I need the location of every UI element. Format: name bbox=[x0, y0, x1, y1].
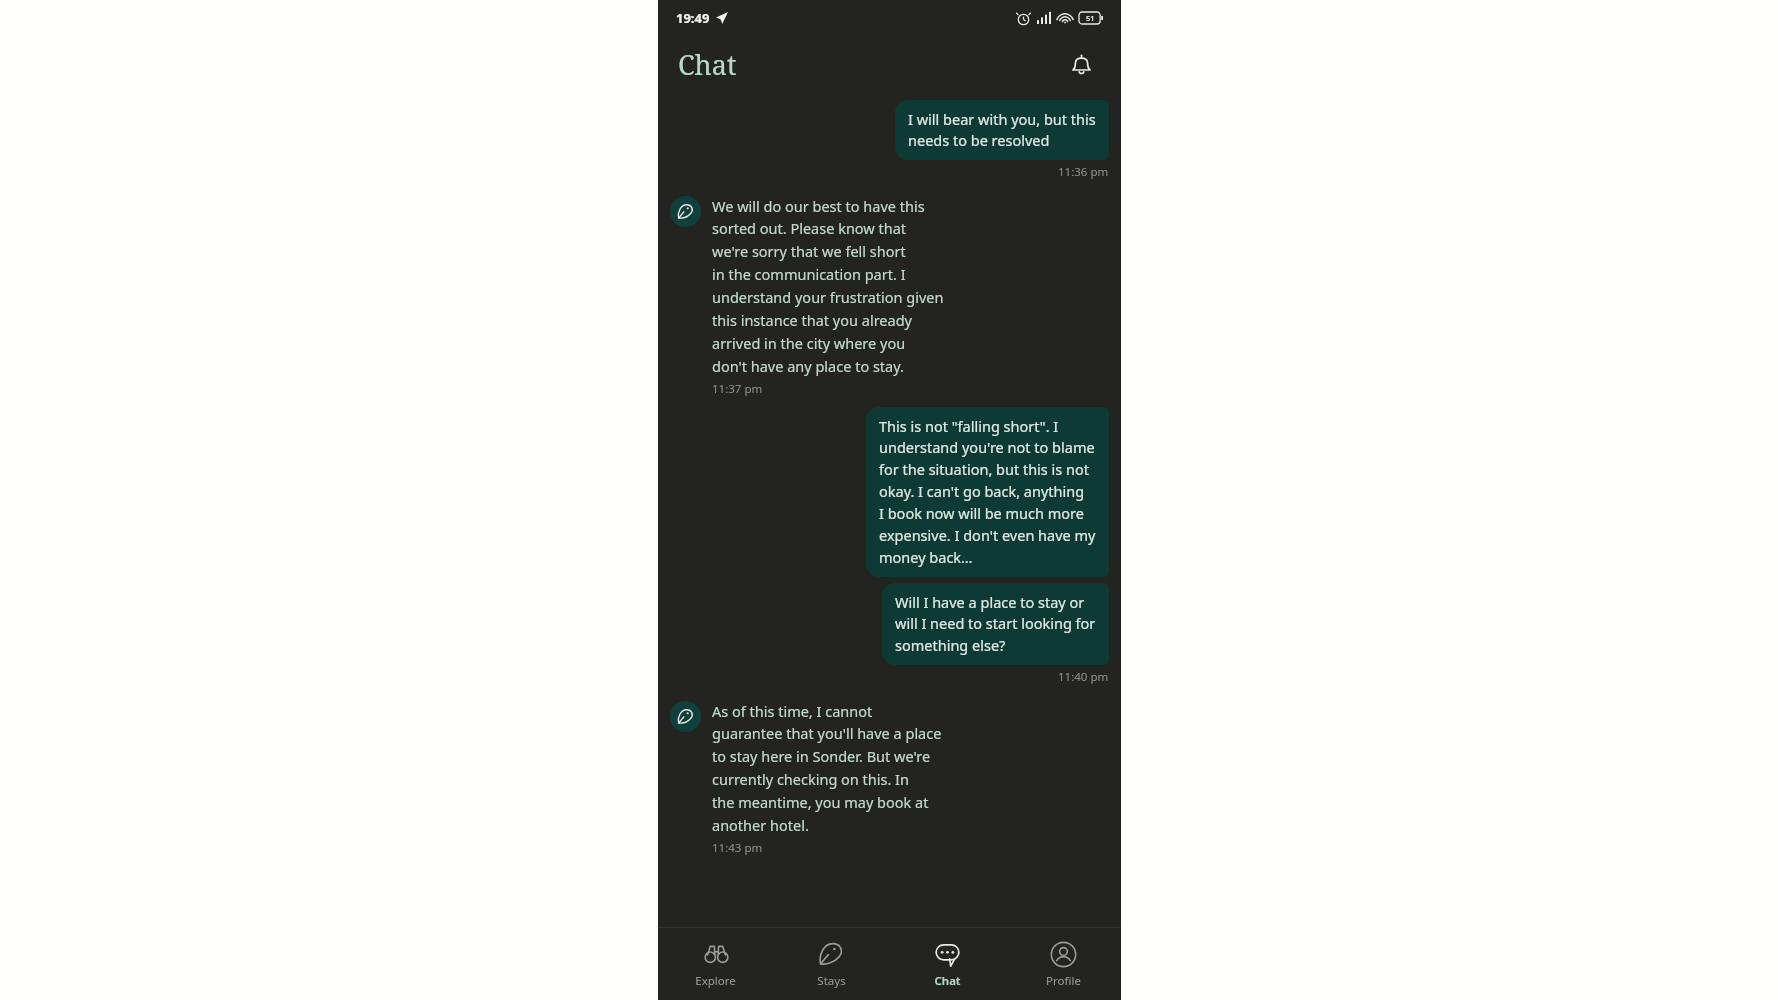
staticText: 51 bbox=[1086, 13, 1095, 23]
staticText: As of this time, I cannot guarantee that… bbox=[712, 701, 942, 835]
staticText: We will do our best to have this sorted … bbox=[712, 196, 944, 376]
staticText: 11:36 pm bbox=[1058, 164, 1109, 180]
button[interactable]: Profile bbox=[1005, 928, 1121, 1000]
button[interactable]: I will bear with you, but this needs to … bbox=[895, 100, 1109, 160]
staticText: Will I have a place to stay or will I ne… bbox=[895, 592, 1096, 656]
staticText: 19:49 bbox=[676, 9, 710, 27]
button[interactable]: Notifications bbox=[1061, 44, 1101, 84]
staticText: Chat bbox=[934, 973, 961, 989]
staticText: 11:43 pm bbox=[712, 840, 763, 856]
staticText: Stays bbox=[817, 973, 846, 989]
button[interactable]: Will I have a place to stay or will I ne… bbox=[882, 583, 1109, 665]
staticText: 11:37 pm bbox=[712, 381, 763, 397]
staticText: I will bear with you, but this needs to … bbox=[908, 109, 1096, 151]
button[interactable]: This is not "falling short". I understan… bbox=[866, 407, 1109, 577]
staticText: This is not "falling short". I understan… bbox=[879, 416, 1096, 568]
staticText: Explore bbox=[695, 973, 736, 989]
button[interactable]: Explore bbox=[658, 928, 773, 1000]
staticText: Profile bbox=[1046, 973, 1081, 989]
staticText: Chat bbox=[678, 46, 737, 83]
button[interactable]: As of this time, I cannot guarantee that… bbox=[712, 701, 942, 835]
button[interactable]: Stays bbox=[773, 928, 889, 1000]
staticText: 11:40 pm bbox=[1058, 669, 1109, 685]
button[interactable]: Chat bbox=[889, 928, 1005, 1000]
button[interactable]: We will do our best to have this sorted … bbox=[712, 196, 944, 376]
